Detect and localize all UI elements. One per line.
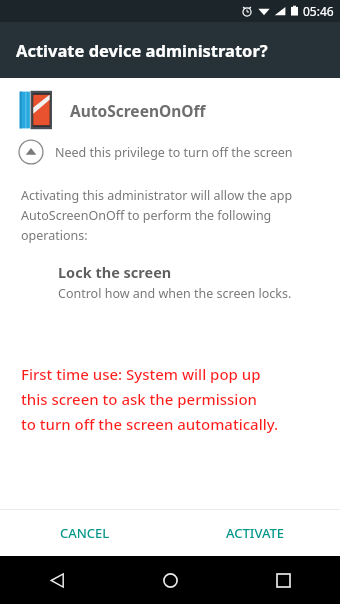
staticText: First time use: System will pop up — [21, 364, 261, 384]
other: Collapse details — [18, 139, 44, 165]
staticText: 05:46 — [303, 3, 334, 19]
staticText: this screen to ask the permission — [22, 390, 258, 410]
staticText: CANCEL — [60, 524, 110, 542]
button[interactable]: Home — [114, 556, 227, 604]
staticText: Activating this administrator will allow… — [21, 187, 293, 204]
staticText: to turn off the screen automatically. — [21, 414, 279, 434]
staticText: Activate device administrator? — [16, 39, 268, 61]
button[interactable]: ACTIVATE — [170, 510, 340, 556]
staticText: First time use: System will pop up — [22, 365, 262, 385]
staticText: Control how and when the screen locks. — [58, 285, 292, 302]
staticText: operations: — [21, 227, 88, 244]
staticText: Need this privilege to turn off the scre… — [55, 144, 293, 161]
staticText: to turn off the screen automatically. — [22, 415, 280, 435]
staticText: Lock the screen — [58, 262, 172, 282]
staticText: AutoScreenOnOff to perform the following — [21, 207, 272, 224]
button[interactable]: Recent apps — [227, 556, 340, 604]
staticText: this screen to ask the permission — [21, 389, 257, 409]
staticText: ACTIVATE — [226, 524, 285, 542]
button[interactable]: Back — [0, 556, 114, 604]
button[interactable]: CANCEL — [0, 510, 170, 556]
staticText: AutoScreenOnOff — [70, 100, 206, 121]
button[interactable]: Collapse details — [18, 139, 340, 165]
